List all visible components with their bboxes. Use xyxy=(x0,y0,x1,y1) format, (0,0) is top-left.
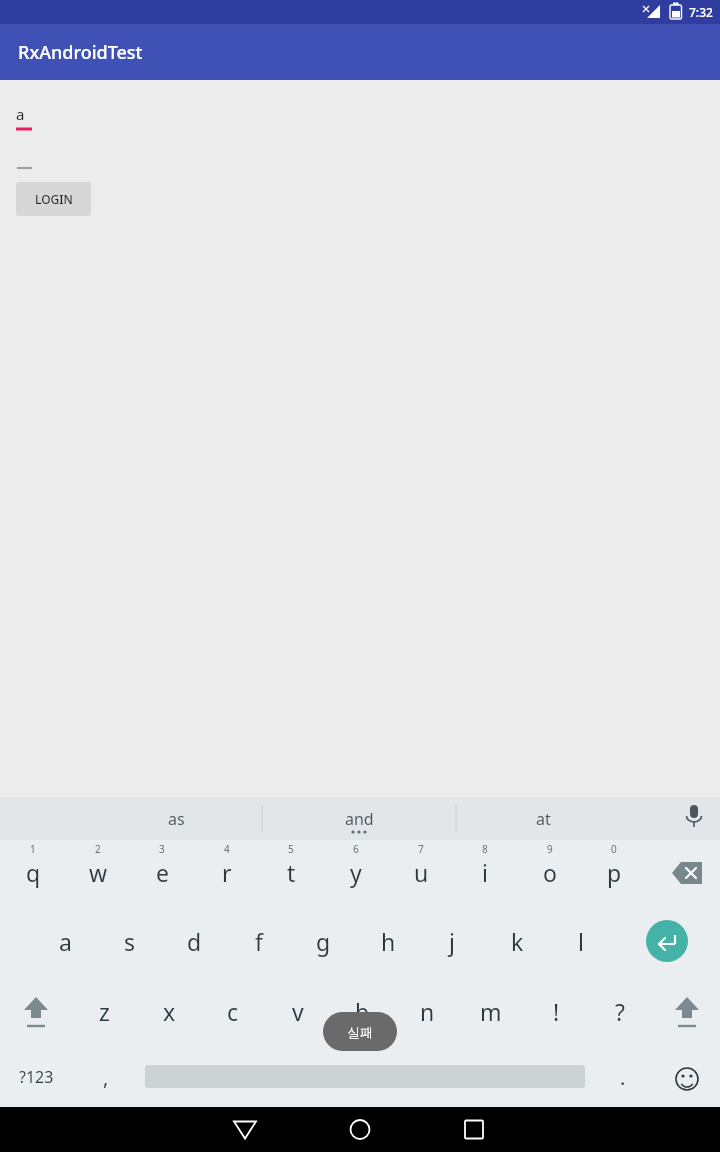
button[interactable]: e xyxy=(132,843,192,901)
staticText: v xyxy=(292,996,304,1027)
staticText: z xyxy=(99,996,110,1027)
button[interactable]: LOGIN xyxy=(16,182,91,216)
button[interactable]: , xyxy=(82,1052,130,1102)
staticText: x xyxy=(163,996,176,1027)
button[interactable]: c xyxy=(203,982,263,1040)
staticText: a xyxy=(59,926,72,957)
staticText: 8 xyxy=(482,842,488,856)
button[interactable]: Enter xyxy=(646,920,688,962)
button[interactable]: z xyxy=(74,982,134,1040)
staticText: 7 xyxy=(418,842,424,856)
staticText: at xyxy=(536,808,551,830)
staticText: 3 xyxy=(159,842,165,856)
staticText: 2 xyxy=(95,842,101,856)
staticText: 0 xyxy=(611,842,617,856)
button[interactable]: x xyxy=(139,982,199,1040)
button[interactable]: d xyxy=(164,912,224,970)
button[interactable]: p xyxy=(584,843,644,901)
button[interactable]: y xyxy=(326,843,386,901)
button[interactable]: g xyxy=(293,912,353,970)
button[interactable]: ! xyxy=(526,982,586,1040)
button[interactable]: l xyxy=(551,912,611,970)
button[interactable]: Emoji xyxy=(665,1055,709,1099)
staticText: f xyxy=(255,926,263,957)
button[interactable]: as xyxy=(86,797,266,840)
button[interactable]: t xyxy=(261,843,321,901)
staticText: ?123 xyxy=(19,1066,54,1088)
button[interactable]: r xyxy=(197,843,257,901)
staticText: u xyxy=(414,857,429,888)
staticText: t xyxy=(287,857,296,888)
staticText: g xyxy=(316,926,331,957)
button[interactable]: Backspace xyxy=(664,857,710,889)
button[interactable]: and xyxy=(269,797,449,840)
staticText: , xyxy=(103,1064,109,1091)
staticText: 5 xyxy=(288,842,294,856)
staticText: 6 xyxy=(353,842,359,856)
button[interactable]: h xyxy=(358,912,418,970)
button[interactable]: at xyxy=(453,797,633,840)
staticText: o xyxy=(543,857,557,888)
staticText: r xyxy=(222,857,232,888)
button[interactable]: v xyxy=(268,982,328,1040)
staticText: ? xyxy=(615,996,625,1027)
button[interactable]: ? xyxy=(590,982,650,1040)
button[interactable]: n xyxy=(397,982,457,1040)
staticText: j xyxy=(449,926,455,957)
staticText: 4 xyxy=(224,842,230,856)
staticText: c xyxy=(227,996,239,1027)
button[interactable]: a xyxy=(16,104,76,134)
staticText: d xyxy=(187,926,202,957)
staticText: 1 xyxy=(30,842,36,856)
button[interactable]: Shift xyxy=(664,987,710,1037)
staticText: a xyxy=(16,104,25,124)
button[interactable]: ?123 xyxy=(6,1052,66,1102)
staticText: n xyxy=(420,996,435,1027)
staticText: . xyxy=(620,1064,626,1091)
button[interactable]: k xyxy=(487,912,547,970)
button[interactable]: a xyxy=(35,912,95,970)
button[interactable]: q xyxy=(3,843,63,901)
staticText: i xyxy=(482,857,488,888)
staticText: w xyxy=(89,857,108,888)
staticText: as xyxy=(168,808,185,830)
staticText: s xyxy=(124,926,136,957)
staticText: k xyxy=(511,926,524,957)
staticText: 실패 xyxy=(347,1024,373,1040)
button[interactable]: s xyxy=(100,912,160,970)
button[interactable]: u xyxy=(391,843,451,901)
staticText: RxAndroidTest xyxy=(18,40,143,65)
button[interactable]: o xyxy=(520,843,580,901)
staticText: e xyxy=(156,857,169,888)
staticText: l xyxy=(578,926,584,957)
button[interactable]: f xyxy=(229,912,289,970)
button[interactable]: . xyxy=(600,1052,646,1102)
staticText: LOGIN xyxy=(35,191,73,207)
button[interactable]: w xyxy=(68,843,128,901)
staticText: 7:32 xyxy=(689,4,713,20)
button[interactable]: b xyxy=(332,982,392,1040)
staticText: h xyxy=(381,926,396,957)
button[interactable]: i xyxy=(455,843,515,901)
staticText: q xyxy=(26,857,41,888)
staticText: 9 xyxy=(547,842,553,856)
button[interactable]: m xyxy=(461,982,521,1040)
staticText: ! xyxy=(553,996,560,1027)
button[interactable] xyxy=(16,150,76,172)
staticText: y xyxy=(350,857,362,888)
staticText: m xyxy=(480,996,502,1027)
button[interactable]: Shift xyxy=(13,987,59,1037)
staticText: p xyxy=(607,857,622,888)
staticText: b xyxy=(355,996,370,1027)
other: Navigation bar xyxy=(0,1107,720,1152)
button[interactable]: Voice input xyxy=(672,797,718,840)
staticText: and xyxy=(345,808,374,830)
button[interactable]: j xyxy=(422,912,482,970)
